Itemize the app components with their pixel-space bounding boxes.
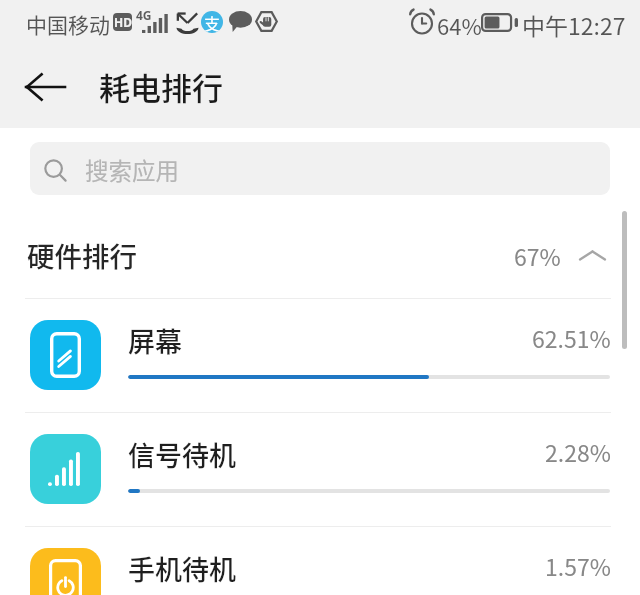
staticText: 信号待机	[128, 435, 236, 474]
staticText: 64%	[437, 9, 482, 41]
staticText: 硬件排行	[27, 235, 137, 275]
staticText: 4G	[136, 7, 152, 23]
staticText: 搜索应用	[85, 153, 179, 187]
staticText: 耗电排行	[99, 64, 223, 109]
staticText: HD	[114, 14, 132, 30]
button[interactable]: 硬件排行	[0, 195, 640, 298]
button[interactable]: 信号待机	[0, 413, 640, 526]
staticText: 67%	[514, 239, 561, 272]
button[interactable]: Back	[14, 56, 76, 118]
staticText: 中国移动	[26, 9, 110, 39]
staticText: 中午12:27	[522, 8, 626, 41]
button[interactable]: 手机待机	[0, 527, 640, 595]
staticText: 2.28%	[545, 435, 611, 468]
staticText: 1.57%	[545, 549, 611, 582]
button[interactable]: 屏幕	[0, 299, 640, 412]
staticText: 屏幕	[128, 321, 182, 360]
staticText: 支	[204, 11, 221, 33]
button[interactable]: 搜索应用	[30, 142, 610, 195]
staticText: 62.51%	[532, 321, 611, 354]
staticText: 手机待机	[128, 549, 236, 588]
